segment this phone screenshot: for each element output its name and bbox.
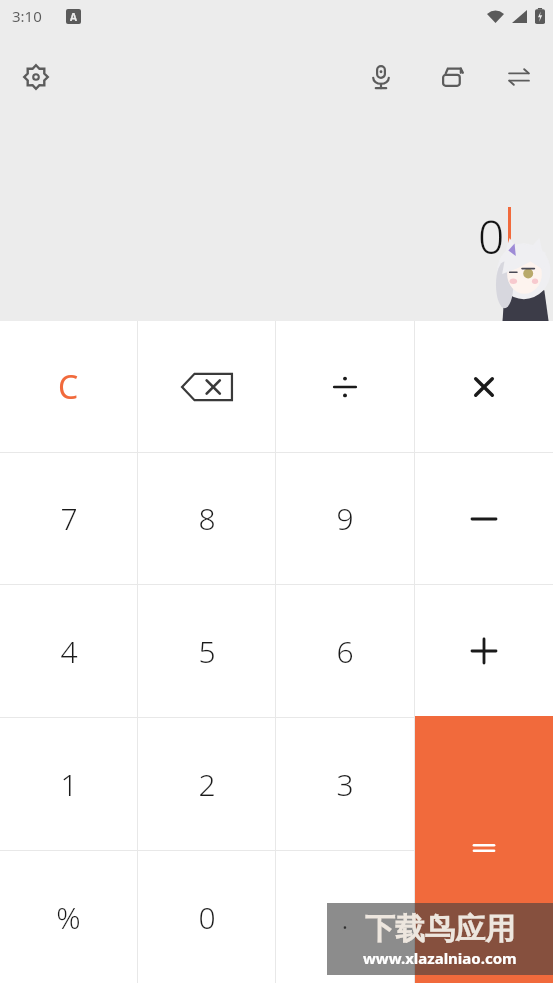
staticText: 4 bbox=[60, 631, 78, 672]
staticText: 8 bbox=[198, 498, 216, 539]
staticText: % bbox=[56, 897, 81, 938]
staticText: 下载鸟应用 bbox=[365, 910, 515, 948]
button[interactable]: 8 bbox=[138, 453, 275, 584]
button[interactable]: 3 bbox=[276, 718, 414, 850]
staticText: A bbox=[70, 10, 77, 24]
staticText: 1 bbox=[60, 764, 78, 805]
staticText: www.xlazalniao.com bbox=[363, 948, 517, 968]
button[interactable]: Voice input bbox=[357, 53, 405, 101]
button[interactable] bbox=[415, 716, 553, 983]
button[interactable]: Settings bbox=[12, 53, 60, 101]
staticText: 0 bbox=[478, 205, 505, 268]
button[interactable] bbox=[415, 453, 553, 584]
button[interactable]: Unit converter bbox=[495, 53, 543, 101]
button[interactable]: 7 bbox=[0, 453, 137, 584]
staticText: 3:10 bbox=[12, 6, 42, 26]
button[interactable]: History bbox=[429, 53, 477, 101]
staticText: C bbox=[58, 365, 79, 409]
staticText: 3 bbox=[336, 764, 354, 805]
button[interactable]: 2 bbox=[138, 718, 275, 850]
button[interactable]: 6 bbox=[276, 585, 414, 717]
button[interactable]: 5 bbox=[138, 585, 275, 717]
button[interactable]: 9 bbox=[276, 453, 414, 584]
button[interactable]: % bbox=[0, 851, 137, 983]
staticText: 5 bbox=[198, 631, 216, 672]
button[interactable]: Backspace bbox=[138, 321, 275, 452]
button[interactable]: 0 bbox=[138, 851, 275, 983]
button[interactable] bbox=[276, 321, 414, 452]
button[interactable]: C bbox=[0, 321, 137, 452]
button[interactable]: 1 bbox=[0, 718, 137, 850]
button[interactable] bbox=[415, 321, 553, 452]
staticText: 9 bbox=[336, 498, 354, 539]
button[interactable]: . bbox=[276, 851, 414, 983]
staticText: 6 bbox=[336, 631, 354, 672]
staticText: . bbox=[341, 897, 349, 938]
button[interactable]: 4 bbox=[0, 585, 137, 717]
button[interactable] bbox=[415, 585, 553, 717]
staticText: 2 bbox=[198, 764, 216, 805]
staticText: 0 bbox=[198, 897, 216, 938]
staticText: 7 bbox=[60, 498, 78, 539]
